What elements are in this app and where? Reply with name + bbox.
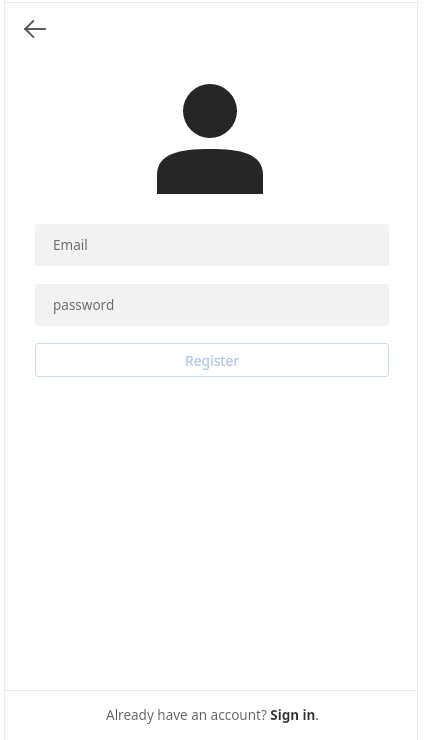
button[interactable]: Already have an account? Sign in. xyxy=(98,700,327,730)
staticText: Already have an account? Sign in. xyxy=(106,706,319,724)
button[interactable]: Email xyxy=(35,224,389,266)
staticText: Register xyxy=(185,351,240,370)
staticText: password xyxy=(53,296,115,314)
button[interactable]: Back xyxy=(16,10,54,48)
button[interactable]: Register xyxy=(35,343,389,377)
staticText: Email xyxy=(53,236,88,254)
button[interactable]: password xyxy=(35,284,389,326)
